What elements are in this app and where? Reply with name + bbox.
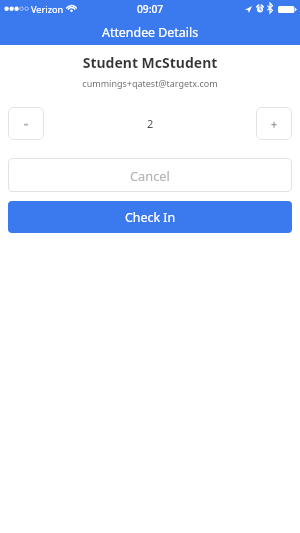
button[interactable]: Cancel: [8, 158, 292, 192]
staticText: 09:07: [137, 2, 164, 16]
staticText: Verizon: [31, 3, 64, 16]
staticText: Student McStudent: [0, 53, 300, 72]
staticText: Attendee Details: [102, 24, 199, 41]
button[interactable]: Decrease: [8, 107, 44, 140]
button[interactable]: Check In: [8, 201, 292, 233]
staticText: Cancel: [130, 167, 170, 184]
button[interactable]: Increase: [256, 107, 292, 140]
staticText: cummings+qatest@targetx.com: [0, 77, 300, 89]
staticText: Check In: [125, 209, 176, 226]
staticText: 2: [147, 116, 154, 131]
